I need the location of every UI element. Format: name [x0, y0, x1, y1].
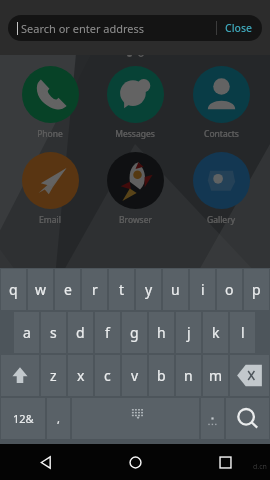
- button[interactable]: Recents: [209, 446, 241, 478]
- staticText: Search or enter address: [21, 21, 145, 36]
- staticText: ,: [57, 411, 60, 426]
- button[interactable]: k: [203, 312, 228, 353]
- button[interactable]: b: [149, 355, 174, 396]
- button[interactable]: l: [230, 312, 255, 353]
- button[interactable]: g: [122, 312, 147, 353]
- staticText: Browser: [119, 214, 152, 226]
- button[interactable]: d: [68, 312, 93, 353]
- button[interactable]: m: [203, 355, 228, 396]
- button[interactable]: Backspace: [230, 355, 269, 396]
- button[interactable]: n: [176, 355, 201, 396]
- staticText: Email: [39, 214, 61, 226]
- button[interactable]: x: [68, 355, 93, 396]
- button[interactable]: ,: [47, 398, 70, 439]
- staticText: q: [9, 280, 18, 299]
- button[interactable]: Back: [29, 446, 61, 478]
- staticText: u: [171, 280, 180, 299]
- button[interactable]: w: [28, 269, 53, 310]
- button[interactable]: u: [163, 269, 188, 310]
- button[interactable]: Messages: [95, 65, 175, 141]
- button[interactable]: h: [149, 312, 174, 353]
- button[interactable]: Email: [10, 151, 90, 227]
- staticText: Messages: [115, 128, 155, 140]
- button[interactable]: Search: [226, 398, 269, 439]
- staticText: g: [130, 323, 139, 342]
- staticText: b: [157, 366, 166, 385]
- button[interactable]: v: [122, 355, 147, 396]
- staticText: w: [35, 280, 47, 299]
- staticText: d: [76, 323, 85, 342]
- button[interactable]: Browser: [95, 151, 175, 227]
- button[interactable]: z: [41, 355, 66, 396]
- staticText: h: [157, 323, 166, 342]
- staticText: c: [104, 366, 111, 385]
- button[interactable]: Gallery: [181, 151, 261, 227]
- button[interactable]: e: [55, 269, 80, 310]
- button[interactable]: Shift: [1, 355, 39, 396]
- staticText: a: [23, 323, 31, 342]
- button[interactable]: Contacts: [181, 65, 261, 141]
- button[interactable]: Space: [72, 398, 199, 439]
- button[interactable]: c: [95, 355, 120, 396]
- button[interactable]: i: [190, 269, 215, 310]
- button[interactable]: 12&: [1, 398, 45, 439]
- button[interactable]: r: [82, 269, 107, 310]
- button[interactable]: f: [95, 312, 120, 353]
- staticText: z: [50, 366, 57, 385]
- staticText: p: [252, 280, 261, 299]
- staticText: f: [105, 323, 110, 342]
- staticText: 12&: [13, 411, 34, 426]
- staticText: k: [212, 323, 220, 342]
- staticText: Gallery: [207, 214, 235, 226]
- button[interactable]: j: [176, 312, 201, 353]
- staticText: j: [187, 323, 191, 342]
- button[interactable]: Period: [201, 398, 224, 439]
- button[interactable]: p: [244, 269, 269, 310]
- staticText: n: [184, 366, 193, 385]
- staticText: l: [241, 323, 245, 342]
- button[interactable]: Search or enter address: [8, 15, 262, 41]
- staticText: m: [209, 366, 223, 385]
- staticText: d.cn: [253, 462, 267, 472]
- staticText: v: [131, 366, 139, 385]
- staticText: o: [225, 280, 234, 299]
- button[interactable]: a: [14, 312, 39, 353]
- button[interactable]: o: [217, 269, 242, 310]
- button[interactable]: s: [41, 312, 66, 353]
- button[interactable]: q: [1, 269, 26, 310]
- staticText: i: [201, 280, 205, 299]
- button[interactable]: y: [136, 269, 161, 310]
- staticText: Contacts: [204, 128, 239, 140]
- staticText: t: [119, 280, 125, 299]
- staticText: r: [92, 280, 98, 299]
- button[interactable]: Phone: [10, 65, 90, 141]
- button[interactable]: t: [109, 269, 134, 310]
- staticText: x: [77, 366, 85, 385]
- staticText: Close: [225, 21, 253, 35]
- staticText: Phone: [37, 128, 63, 140]
- button[interactable]: Home: [119, 446, 151, 478]
- staticText: y: [145, 280, 153, 299]
- staticText: s: [50, 323, 57, 342]
- staticText: e: [64, 280, 72, 299]
- button[interactable]: Close: [217, 21, 254, 35]
